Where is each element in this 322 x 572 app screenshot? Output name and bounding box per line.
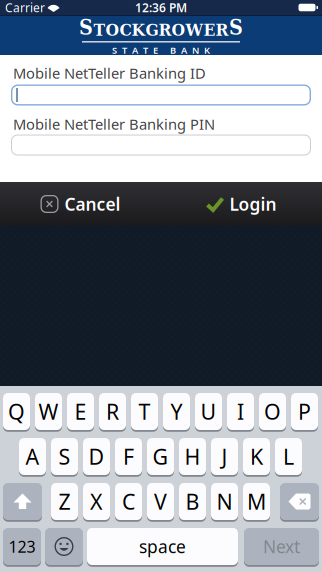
button[interactable]: Mobile NetTeller Banking ID (11, 84, 311, 105)
staticText: Cancel (64, 192, 120, 215)
staticText: I (237, 397, 244, 426)
staticText: Next (263, 535, 300, 558)
staticText: H (184, 442, 200, 471)
staticText: C (122, 487, 135, 516)
staticText: G (152, 442, 168, 471)
staticText: Y (170, 397, 182, 426)
button[interactable]: Q (3, 393, 30, 431)
staticText: S (79, 15, 93, 40)
button[interactable]: R (99, 393, 126, 431)
staticText: STATE BANK (112, 44, 210, 56)
button[interactable]: Shift (3, 483, 42, 521)
staticText: W (38, 397, 58, 426)
button[interactable]: U (195, 393, 222, 431)
button[interactable]: D (83, 438, 110, 476)
staticText: J (221, 442, 227, 471)
button[interactable]: W (35, 393, 62, 431)
button[interactable]: N (211, 483, 238, 521)
staticText: R (106, 397, 119, 426)
button[interactable]: Cancel (0, 182, 161, 226)
button[interactable]: M (243, 483, 270, 521)
staticText: B (185, 487, 199, 516)
staticText: T (138, 397, 150, 426)
button[interactable]: A (19, 438, 46, 476)
staticText: D (88, 442, 104, 471)
button[interactable]: F (115, 438, 142, 476)
button[interactable]: Mobile NetTeller Banking PIN (11, 134, 311, 155)
staticText: M (247, 487, 266, 516)
button[interactable]: J (211, 438, 238, 476)
button[interactable]: P (291, 393, 318, 431)
staticText: Mobile NetTeller Banking ID (13, 63, 206, 83)
staticText: K (250, 442, 263, 471)
staticText: Q (8, 397, 25, 426)
staticText: Mobile NetTeller Banking PIN (13, 114, 215, 134)
button[interactable]: Next (244, 528, 319, 566)
staticText: U (200, 397, 216, 426)
staticText: N (216, 487, 232, 516)
button[interactable]: Z (51, 483, 78, 521)
button[interactable]: 123 (3, 528, 41, 566)
button[interactable]: space (87, 528, 238, 566)
button[interactable]: L (275, 438, 302, 476)
button[interactable]: H (179, 438, 206, 476)
button[interactable]: C (115, 483, 142, 521)
staticText: 123 (8, 536, 35, 557)
staticText: V (154, 487, 167, 516)
button[interactable]: S (51, 438, 78, 476)
button[interactable]: Emoji (45, 528, 83, 566)
button[interactable]: X (83, 483, 110, 521)
staticText: space (139, 535, 186, 558)
button[interactable]: V (147, 483, 174, 521)
staticText: L (283, 442, 294, 471)
button[interactable]: Login (161, 182, 322, 226)
staticText: A (25, 442, 39, 471)
button[interactable]: K (243, 438, 270, 476)
staticText: X (90, 487, 103, 516)
staticText: F (123, 442, 134, 471)
button[interactable]: B (179, 483, 206, 521)
staticText: S (229, 15, 243, 40)
staticText: E (74, 397, 86, 426)
staticText: Login (229, 192, 276, 215)
button[interactable]: Delete (280, 483, 319, 521)
button[interactable]: T (131, 393, 158, 431)
button[interactable]: E (67, 393, 94, 431)
button[interactable]: Y (163, 393, 190, 431)
button[interactable]: O (259, 393, 286, 431)
button[interactable]: G (147, 438, 174, 476)
staticText: 12:36 PM (135, 0, 187, 15)
staticText: Z (58, 487, 70, 516)
button[interactable]: I (227, 393, 254, 431)
staticText: S (58, 442, 70, 471)
staticText: Carrier (5, 0, 45, 15)
staticText: TOCKGROWER (93, 19, 228, 40)
staticText: O (264, 397, 281, 426)
staticText: P (298, 397, 311, 426)
